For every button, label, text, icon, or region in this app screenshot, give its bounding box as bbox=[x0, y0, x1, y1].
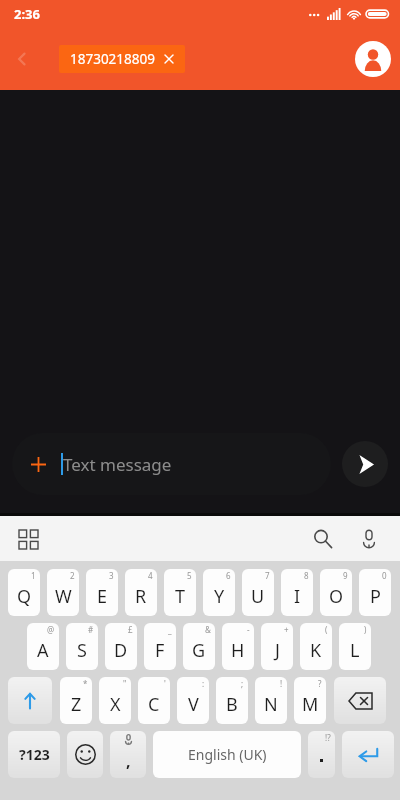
staticText: , bbox=[126, 750, 131, 772]
staticText: 7 bbox=[265, 570, 270, 581]
staticText: 18730218809 bbox=[70, 50, 155, 68]
staticText: K bbox=[310, 638, 322, 663]
staticText: Z bbox=[71, 692, 82, 717]
staticText: 2:36 bbox=[14, 5, 40, 23]
staticText: " bbox=[123, 678, 127, 689]
button[interactable]: - bbox=[222, 623, 254, 670]
staticText: Y bbox=[214, 584, 225, 609]
staticText: V bbox=[188, 692, 199, 717]
staticText: * bbox=[83, 678, 88, 689]
staticText: ( bbox=[325, 624, 328, 635]
button[interactable]: " bbox=[99, 677, 131, 724]
staticText: + bbox=[284, 624, 289, 635]
staticText: X bbox=[110, 692, 121, 717]
staticText: 5 bbox=[187, 570, 192, 581]
button[interactable]: 18730218809 bbox=[59, 45, 185, 73]
staticText: P bbox=[370, 584, 381, 609]
button[interactable]: 5 bbox=[164, 569, 196, 616]
button[interactable]: Search bbox=[306, 522, 340, 556]
button[interactable]: English (UK) bbox=[153, 731, 301, 778]
button[interactable]: + bbox=[261, 623, 293, 670]
staticText: L bbox=[350, 638, 360, 663]
staticText: A bbox=[37, 638, 49, 663]
button[interactable]: & bbox=[183, 623, 215, 670]
staticText: R bbox=[135, 584, 147, 609]
staticText: J bbox=[275, 638, 280, 663]
button[interactable]: * bbox=[60, 677, 92, 724]
staticText: ?123 bbox=[19, 745, 50, 764]
staticText: W bbox=[55, 584, 72, 609]
staticText: 6 bbox=[226, 570, 231, 581]
staticText: 4 bbox=[148, 570, 153, 581]
staticText: D bbox=[114, 638, 128, 663]
staticText: M bbox=[302, 692, 319, 717]
staticText: Q bbox=[17, 584, 32, 609]
staticText: # bbox=[88, 624, 94, 635]
staticText: O bbox=[329, 584, 344, 609]
staticText: & bbox=[205, 624, 211, 635]
button[interactable]: _ bbox=[144, 623, 176, 670]
staticText: F bbox=[155, 638, 165, 663]
staticText: !? bbox=[325, 732, 331, 743]
button[interactable]: # bbox=[66, 623, 98, 670]
button[interactable]: Text message bbox=[12, 433, 331, 495]
staticText: 1 bbox=[31, 570, 36, 581]
button[interactable]: 8 bbox=[281, 569, 313, 616]
button[interactable]: Send bbox=[342, 441, 388, 487]
button[interactable]: ( bbox=[300, 623, 332, 670]
staticText: English (UK) bbox=[188, 745, 267, 764]
staticText: - bbox=[247, 624, 250, 635]
staticText: ; bbox=[241, 678, 244, 689]
button[interactable] bbox=[342, 731, 394, 778]
staticText: U bbox=[251, 584, 265, 609]
staticText: B bbox=[226, 692, 238, 717]
button[interactable] bbox=[67, 731, 103, 778]
button[interactable]: Contact bbox=[346, 32, 400, 86]
button[interactable]: ) bbox=[339, 623, 371, 670]
button[interactable]: 6 bbox=[203, 569, 235, 616]
staticText: H bbox=[231, 638, 245, 663]
staticText: ' bbox=[164, 678, 166, 689]
staticText: Text message bbox=[63, 453, 172, 476]
button[interactable]: 2 bbox=[47, 569, 79, 616]
staticText: 3 bbox=[109, 570, 114, 581]
staticText: ! bbox=[280, 678, 283, 689]
button[interactable]: Period bbox=[308, 731, 335, 778]
staticText: 2 bbox=[70, 570, 75, 581]
button[interactable]: Comma, voice input bbox=[110, 731, 146, 778]
staticText: S bbox=[77, 638, 87, 663]
staticText: 9 bbox=[343, 570, 348, 581]
button[interactable]: ? bbox=[294, 677, 326, 724]
staticText: T bbox=[175, 584, 186, 609]
staticText: G bbox=[192, 638, 206, 663]
staticText: I bbox=[294, 584, 301, 609]
button[interactable]: 9 bbox=[320, 569, 352, 616]
staticText: E bbox=[97, 584, 108, 609]
button[interactable]: Shift bbox=[8, 677, 52, 724]
button[interactable]: Clipboard bbox=[12, 523, 44, 555]
button[interactable]: ; bbox=[216, 677, 248, 724]
staticText: N bbox=[264, 692, 278, 717]
button[interactable]: @ bbox=[27, 623, 59, 670]
button[interactable]: Back bbox=[0, 37, 44, 81]
staticText: 8 bbox=[304, 570, 309, 581]
button[interactable]: Voice input bbox=[352, 522, 386, 556]
button[interactable]: £ bbox=[105, 623, 137, 670]
staticText: _ bbox=[168, 624, 172, 635]
button[interactable]: 0 bbox=[359, 569, 391, 616]
staticText: : bbox=[202, 678, 205, 689]
button[interactable]: 7 bbox=[242, 569, 274, 616]
staticText: 0 bbox=[382, 570, 387, 581]
button[interactable]: ! bbox=[255, 677, 287, 724]
button[interactable]: Backspace bbox=[334, 677, 386, 724]
button[interactable]: ' bbox=[138, 677, 170, 724]
staticText: £ bbox=[128, 624, 133, 635]
button[interactable]: : bbox=[177, 677, 209, 724]
staticText: @ bbox=[47, 624, 55, 635]
staticText: ) bbox=[364, 624, 367, 635]
button[interactable]: 1 bbox=[8, 569, 40, 616]
button[interactable]: 3 bbox=[86, 569, 118, 616]
staticText: ? bbox=[318, 678, 322, 689]
button[interactable]: ?123 bbox=[8, 731, 60, 778]
button[interactable]: 4 bbox=[125, 569, 157, 616]
